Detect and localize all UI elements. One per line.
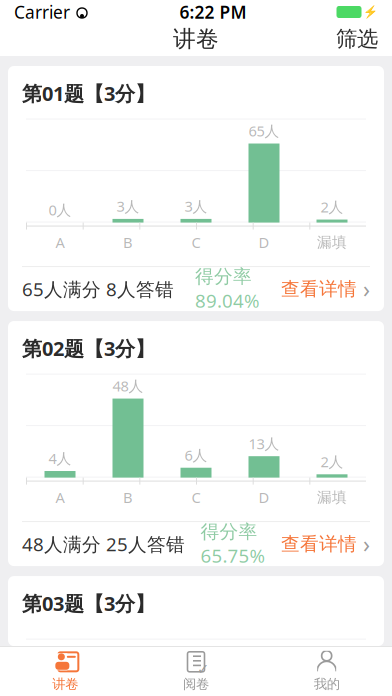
staticText: ✓ [197,660,209,677]
button[interactable]: 筛选 [322,22,392,56]
staticText: D [258,233,269,252]
staticText: A [55,488,64,507]
staticText: 第03题【3分】 [22,590,155,617]
staticText: 第01题【3分】 [22,80,155,107]
staticText: 2人 [320,452,343,471]
button[interactable]: 我的 [261,647,392,696]
staticText: 讲卷 [52,676,78,692]
staticText: D [258,488,269,507]
staticText: B [123,233,133,252]
staticText: 65人 [248,121,279,140]
staticText: 漏填 [317,488,347,506]
staticText: B [123,488,133,507]
staticText: 48人满分 25人答错 [22,532,185,556]
staticText: 13人 [248,434,279,453]
button[interactable]: 讲卷 [0,647,131,696]
staticText: 48人 [112,376,143,396]
staticText: 2人 [320,197,343,217]
staticText: ⚡ [363,5,378,19]
staticText: C [191,488,200,507]
staticText: 得分率89.04% [195,265,260,313]
staticText: 6:22 PM [179,0,246,23]
staticText: 第02题【3分】 [22,335,155,362]
staticText [70,0,75,23]
staticText: 讲卷 [173,25,219,53]
staticText: A [55,233,64,252]
staticText: Carrier [14,0,70,23]
staticText: › [357,529,370,559]
staticText: 查看详情 [281,533,357,555]
button[interactable]: 65人满分 8人答错 [8,267,384,311]
staticText: 筛选 [336,26,378,52]
staticText: 4人 [48,448,71,468]
staticText: 阅卷 [183,676,209,692]
staticText: 0人 [48,200,71,220]
button[interactable]: ✓ [131,647,261,696]
staticText: 3人 [184,196,207,216]
staticText: C [191,233,200,252]
staticText: 漏填 [317,233,347,251]
button[interactable]: 48人满分 25人答错 [8,522,384,566]
staticText: › [357,274,370,304]
staticText: 3人 [116,196,139,216]
staticText: 65人满分 8人答错 [22,277,174,301]
staticText: 我的 [314,676,340,692]
staticText: 6人 [184,445,207,465]
staticText: 得分率65.75% [200,520,265,568]
staticText: 查看详情 [281,278,357,300]
